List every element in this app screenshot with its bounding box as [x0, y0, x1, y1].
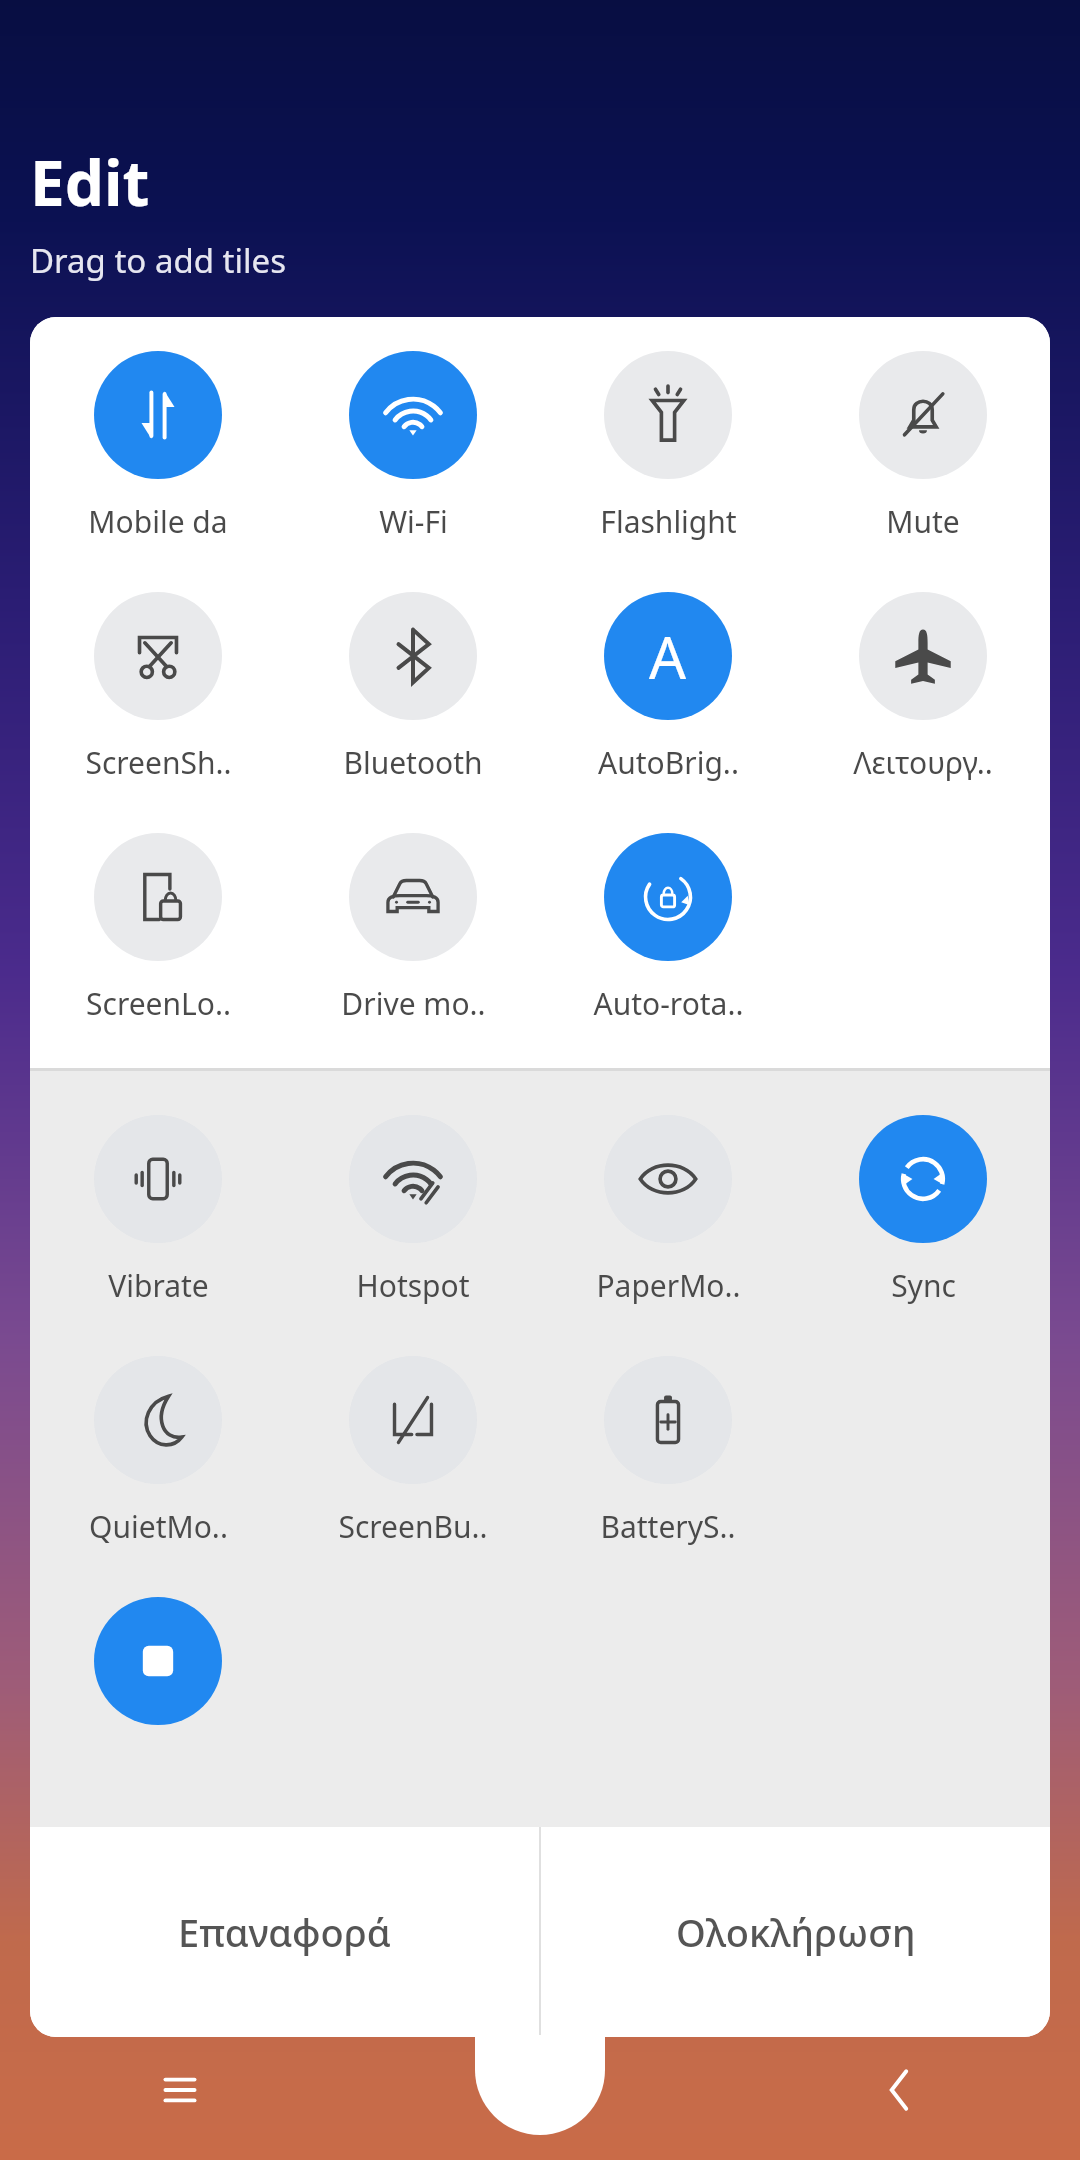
button[interactable]: Vibrate [33, 1115, 283, 1306]
staticText: QuietMo.. [89, 1506, 228, 1547]
button[interactable]: Back [720, 2020, 1080, 2160]
staticText: Ολοκλήρωση [676, 1906, 916, 1958]
button[interactable]: QuietMo.. [33, 1356, 283, 1547]
staticText: Sync [891, 1265, 956, 1306]
button[interactable]: Mobile da [33, 351, 283, 542]
staticText: Mobile da [88, 501, 228, 542]
staticText: PaperMo.. [596, 1265, 741, 1306]
button[interactable]: Stop [94, 1597, 222, 1725]
button[interactable]: PaperMo.. [543, 1115, 793, 1306]
button[interactable]: Bluetooth [288, 592, 538, 783]
staticText: Flashlight [600, 501, 737, 542]
staticText: Επαναφορά [178, 1906, 391, 1958]
button[interactable]: Drive mo.. [288, 833, 538, 1024]
staticText: Bluetooth [343, 742, 483, 783]
button[interactable]: Recent apps [0, 2020, 360, 2160]
staticText: AutoBrig.. [598, 742, 739, 783]
button[interactable]: Hotspot [288, 1115, 538, 1306]
staticText: A [649, 617, 687, 696]
staticText: Λειτουργ.. [853, 742, 993, 783]
staticText: ScreenSh.. [85, 742, 232, 783]
button[interactable]: BatteryS.. [543, 1356, 793, 1547]
staticText: ScreenBu.. [338, 1506, 488, 1547]
button[interactable]: Επαναφορά [30, 1827, 539, 2037]
button[interactable]: Sync [798, 1115, 1048, 1306]
button[interactable]: ScreenLo.. [33, 833, 283, 1024]
staticText: Hotspot [356, 1265, 470, 1306]
staticText: Edit [30, 140, 150, 224]
button[interactable]: Mute [798, 351, 1048, 542]
button[interactable]: ScreenBu.. [288, 1356, 538, 1547]
staticText: Auto-rota.. [593, 983, 744, 1024]
staticText: Mute [886, 501, 960, 542]
button[interactable]: Collapse panel [475, 2035, 605, 2135]
button[interactable]: Flashlight [543, 351, 793, 542]
button[interactable]: Ολοκλήρωση [541, 1827, 1050, 2037]
button[interactable]: A [543, 592, 793, 783]
staticText: Vibrate [108, 1265, 209, 1306]
button[interactable]: Home [360, 2020, 720, 2160]
button[interactable]: Wi-Fi [288, 351, 538, 542]
staticText: Wi-Fi [379, 501, 448, 542]
button[interactable]: Auto-rota.. [543, 833, 793, 1024]
staticText: Drive mo.. [341, 983, 486, 1024]
button[interactable]: ScreenSh.. [33, 592, 283, 783]
button[interactable]: Λειτουργ.. [798, 592, 1048, 783]
staticText: BatteryS.. [600, 1506, 736, 1547]
staticText: Drag to add tiles [30, 238, 286, 283]
staticText: ScreenLo.. [86, 983, 231, 1024]
